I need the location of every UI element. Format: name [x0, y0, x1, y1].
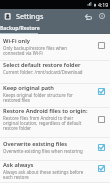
staticText: Overwrite existing files	[3, 140, 68, 148]
button[interactable]: Select default restore folder	[0, 61, 110, 84]
staticText: Only backup/restore files when connected…	[3, 45, 68, 56]
staticText: Ask always	[3, 161, 34, 169]
staticText: Always ask about these settings before e…	[3, 169, 84, 180]
button[interactable]: Overwrite existing files	[0, 138, 110, 161]
button[interactable]: Restore	[81, 9, 95, 23]
staticText: Restore Android files to origin:	[3, 107, 88, 115]
button[interactable]: Up	[2, 11, 13, 22]
button[interactable]: Help	[95, 9, 109, 23]
staticText: Current folder: /mnt/sdcard/Download	[3, 69, 83, 75]
staticText: Settings	[16, 11, 44, 21]
staticText: Keep original path	[3, 84, 54, 92]
button[interactable]: Wi-Fi only	[0, 34, 110, 61]
button[interactable]: Restore Android files to origin:	[0, 108, 110, 138]
staticText: Restore files from Android to their orig…	[3, 115, 82, 131]
button[interactable]: Backup/Restore	[0, 23, 38, 34]
button[interactable]: Keep original path	[0, 84, 110, 108]
staticText: Overwrite existing files when restoring	[3, 148, 83, 154]
staticText: 4:19	[98, 1, 109, 8]
staticText: Wi-Fi only	[3, 37, 30, 45]
button[interactable]: Ask always	[0, 161, 110, 183]
staticText: Backup/Restore	[0, 25, 38, 32]
staticText: Select default restore folder	[3, 61, 81, 69]
staticText: Keeps original folder structure for rest…	[3, 92, 73, 103]
